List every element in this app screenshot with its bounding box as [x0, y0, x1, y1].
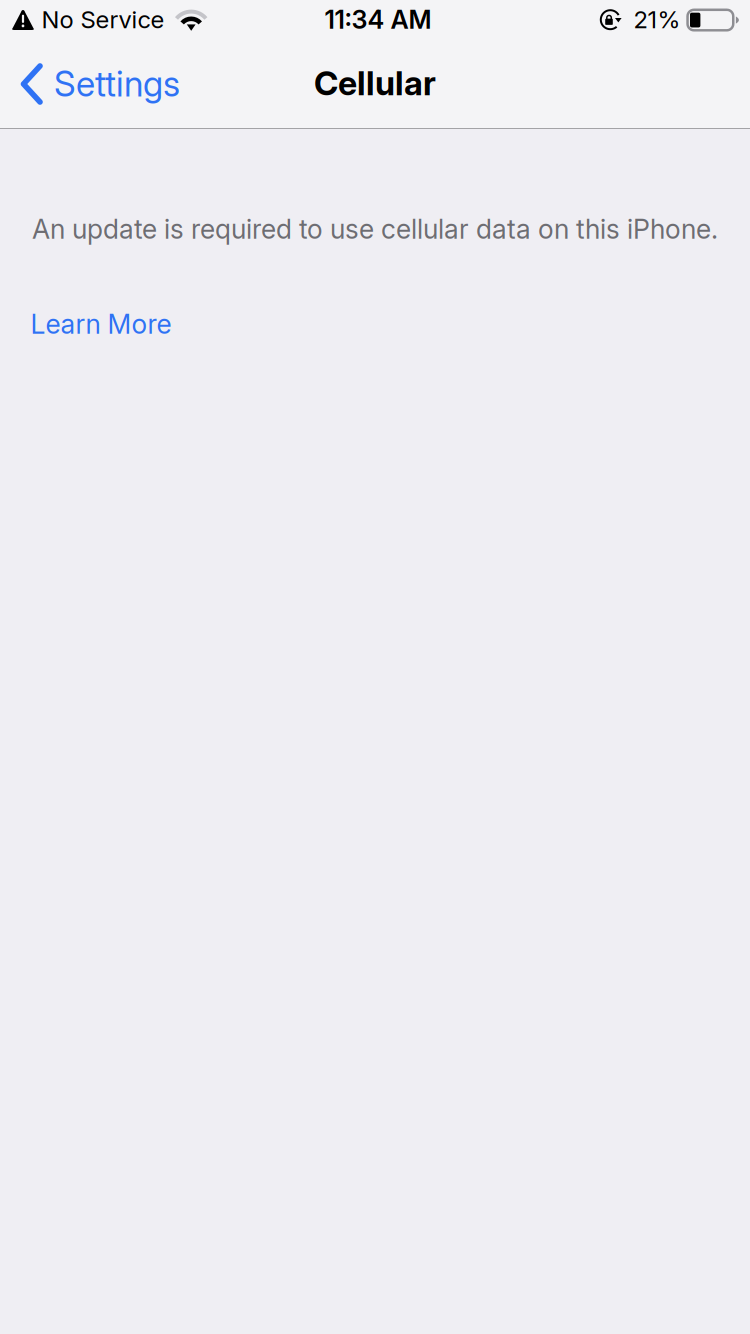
staticText: No Service — [41, 5, 164, 34]
staticText: Learn More — [30, 308, 171, 340]
staticText: 21% — [633, 5, 680, 34]
staticText: An update is required to use cellular da… — [32, 213, 718, 245]
staticText: 11:34 AM — [324, 4, 431, 35]
button[interactable]: Learn More — [28, 302, 173, 346]
staticText: Settings — [54, 63, 180, 105]
button[interactable]: Settings — [1, 40, 194, 128]
staticText: Cellular — [314, 63, 436, 103]
